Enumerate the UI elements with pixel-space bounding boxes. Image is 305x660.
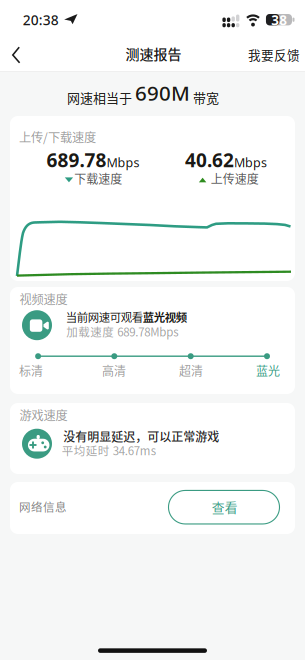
staticText: 标清	[19, 362, 43, 379]
staticText: 视频速度	[19, 290, 67, 308]
staticText: 上传速度	[211, 170, 259, 187]
staticText: 上传/下载速度	[19, 128, 96, 146]
staticText: 40.62Mbps	[185, 147, 267, 172]
staticText: 当前网速可观看蓝光视频	[66, 309, 187, 325]
staticText: 蓝光	[256, 362, 280, 379]
staticText: 网速相当于 690M 带宽	[67, 79, 219, 106]
staticText: 加载速度 689.78Mbps	[66, 323, 178, 340]
staticText: 查看	[212, 498, 238, 516]
staticText: 超清	[179, 362, 203, 379]
staticText: 下载速度	[74, 170, 122, 187]
staticText: 20:38	[23, 10, 59, 29]
staticText: 平均延时 34.67ms	[62, 442, 156, 459]
staticText: 游戏速度	[19, 406, 67, 424]
staticText: 网络信息	[19, 498, 67, 515]
staticText: 我要反馈	[248, 45, 300, 63]
staticText: 没有明显延迟，可以正常游戏	[63, 428, 219, 445]
staticText: 高清	[102, 362, 126, 379]
staticText: 38	[271, 11, 287, 29]
staticText: 测速报告	[125, 43, 181, 64]
staticText: 689.78Mbps	[46, 147, 139, 172]
